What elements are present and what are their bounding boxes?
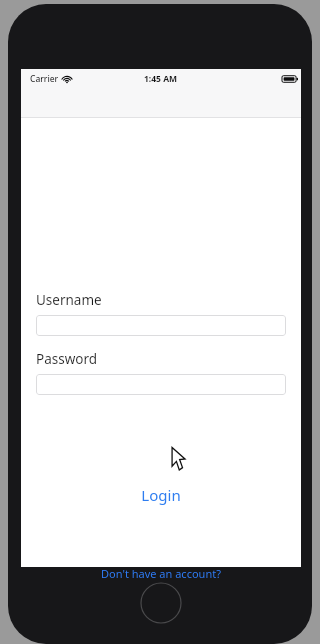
button[interactable]: [36, 374, 286, 395]
button[interactable]: [36, 315, 286, 336]
staticText: 1:45 AM: [144, 73, 178, 85]
staticText: Password: [36, 350, 98, 368]
other: Battery: [282, 75, 298, 83]
staticText: Carrier: [30, 73, 59, 85]
staticText: Login: [141, 485, 181, 505]
staticText: Username: [36, 291, 102, 309]
button[interactable]: Login: [21, 482, 301, 508]
button[interactable]: Don't have an account?: [21, 562, 301, 584]
other: Home: [140, 582, 182, 624]
other: Wi-Fi: [62, 75, 72, 83]
staticText: Don't have an account?: [101, 566, 221, 581]
